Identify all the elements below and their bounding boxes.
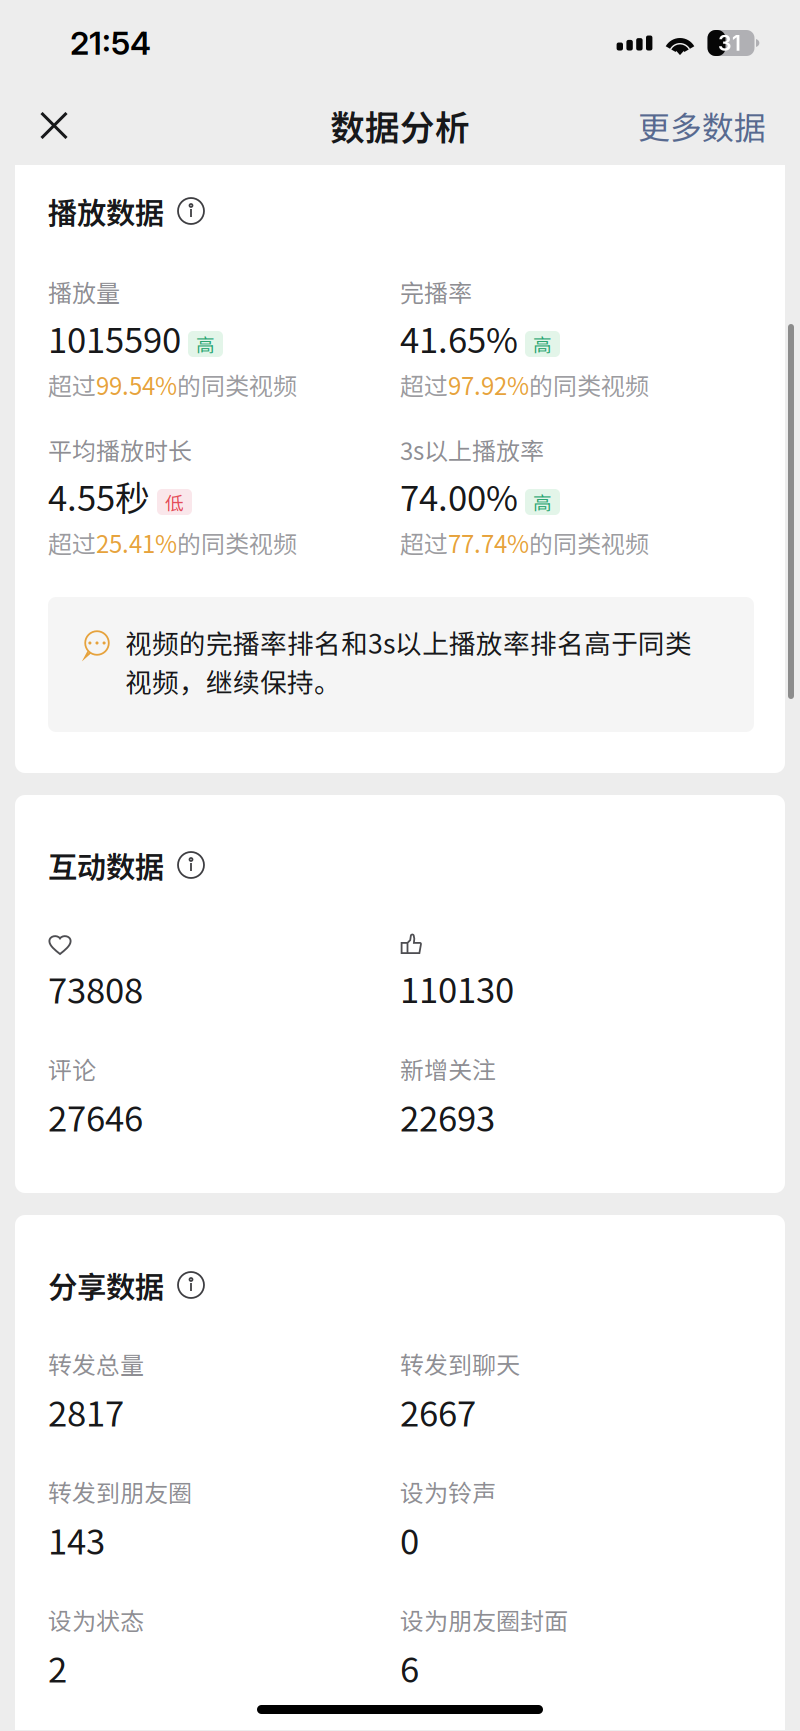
staticText: 74.00% — [400, 471, 518, 521]
staticText: 143 — [48, 1514, 105, 1565]
button[interactable]: 说明 — [178, 852, 204, 878]
staticText: 22693 — [400, 1091, 495, 1142]
staticText: 0 — [400, 1514, 419, 1565]
staticText: 超过 — [48, 367, 96, 402]
staticText: 互动数据 — [48, 844, 164, 886]
staticText: 低 — [165, 488, 184, 515]
staticText: 分享数据 — [48, 1264, 164, 1306]
staticText: 99.54% — [96, 367, 177, 402]
staticText: 设为铃声 — [400, 1474, 496, 1509]
staticText: 设为朋友圈封面 — [400, 1602, 568, 1637]
staticText: 转发到聊天 — [400, 1346, 520, 1381]
staticText: 播放量 — [48, 274, 120, 309]
staticText: 转发总量 — [48, 1346, 144, 1381]
staticText: 2667 — [400, 1386, 476, 1437]
staticText: 27646 — [48, 1091, 143, 1142]
staticText: 新增关注 — [400, 1051, 496, 1086]
staticText: 41.65% — [400, 313, 518, 363]
staticText: 视频的完播率排名和3s以上播放率排名高于同类视频，继续保持。 — [125, 623, 692, 700]
staticText: 97.92% — [448, 367, 529, 402]
staticText: 平均播放时长 — [48, 432, 192, 467]
staticText: 73808 — [48, 963, 143, 1014]
staticText: 6 — [400, 1642, 419, 1693]
staticText: 的同类视频 — [529, 367, 649, 402]
staticText: 2817 — [48, 1386, 124, 1437]
staticText: 的同类视频 — [177, 525, 297, 560]
button[interactable]: 更多数据 — [638, 97, 766, 153]
staticText: 更多数据 — [638, 102, 766, 149]
staticText: 31 — [718, 30, 741, 56]
button[interactable]: 关闭 — [26, 97, 82, 153]
staticText: 设为状态 — [48, 1602, 144, 1637]
button[interactable]: 说明 — [178, 198, 204, 224]
staticText: 1015590 — [48, 313, 181, 363]
staticText: 25.41% — [96, 525, 177, 560]
staticText: 超过 — [48, 525, 96, 560]
staticText: 播放数据 — [48, 190, 164, 232]
staticText: 21:54 — [70, 24, 151, 62]
staticText: 高 — [533, 488, 552, 515]
staticText: 2 — [48, 1642, 67, 1693]
staticText: 3s以上播放率 — [400, 432, 544, 467]
staticText: 超过 — [400, 367, 448, 402]
staticText: 77.74% — [448, 525, 529, 560]
staticText: 的同类视频 — [529, 525, 649, 560]
button[interactable]: 说明 — [178, 1272, 204, 1298]
staticText: 高 — [533, 330, 552, 357]
staticText: 评论 — [48, 1051, 96, 1086]
staticText: 高 — [196, 330, 215, 357]
staticText: 超过 — [400, 525, 448, 560]
staticText: 110130 — [400, 963, 514, 1013]
staticText: 的同类视频 — [177, 367, 297, 402]
staticText: 4.55秒 — [48, 471, 150, 521]
staticText: 转发到朋友圈 — [48, 1474, 192, 1509]
staticText: 完播率 — [400, 274, 472, 309]
staticText: 数据分析 — [330, 100, 470, 151]
